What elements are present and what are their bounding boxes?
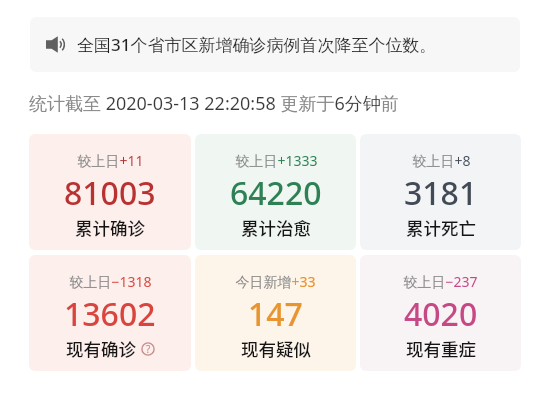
staticText: 今日新增+33 [235, 272, 316, 291]
button[interactable]: 较上日+11 [29, 134, 191, 250]
staticText: 较上日−1318 [69, 272, 152, 291]
staticText: ? [146, 342, 151, 356]
staticText: 现有确诊 [66, 336, 136, 361]
other: Announcement [46, 36, 64, 53]
button[interactable]: 较上日+8 [360, 134, 521, 250]
staticText: 统计截至 2020-03-13 22:20:58 更新于6分钟前 [29, 91, 399, 116]
staticText: 3181 [404, 171, 478, 215]
button[interactable]: 较上日−237 [360, 255, 521, 371]
staticText: 64220 [230, 171, 322, 215]
button[interactable]: Help [141, 342, 155, 356]
staticText: 4020 [404, 292, 478, 336]
staticText: 13602 [64, 292, 156, 336]
button[interactable]: 较上日−1318 [29, 255, 191, 371]
staticText: 较上日+1333 [235, 151, 318, 170]
staticText: 较上日+11 [77, 151, 144, 170]
staticText: 全国31个省市区新增确诊病例首次降至个位数。 [77, 33, 437, 56]
staticText: 现有重症 [406, 336, 476, 361]
staticText: 累计确诊 [75, 215, 145, 240]
staticText: 累计治愈 [241, 215, 311, 240]
staticText: 较上日+8 [412, 151, 471, 170]
button[interactable]: 今日新增+33 [195, 255, 356, 371]
staticText: 现有疑似 [241, 336, 311, 361]
staticText: 81003 [64, 171, 156, 215]
button[interactable]: Announcement [30, 17, 520, 72]
staticText: 较上日−237 [403, 272, 478, 291]
staticText: 累计死亡 [406, 215, 476, 240]
button[interactable]: 较上日+1333 [195, 134, 356, 250]
staticText: 147 [248, 292, 303, 336]
